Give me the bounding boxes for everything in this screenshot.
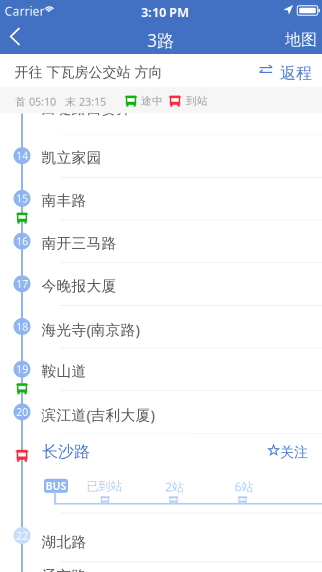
button[interactable]: 地图 [276,20,322,54]
button[interactable]: 南丰路 [0,178,322,220]
button[interactable]: 长沙路 [42,434,192,468]
staticText: 3路 [147,28,174,52]
button[interactable]: 滨江道(吉利大厦) [0,391,322,433]
staticText: 14 [16,148,28,163]
button[interactable]: 返程 [254,54,322,87]
staticText: 地图 [285,29,317,50]
staticText: 20 [16,405,28,419]
staticText: 南丰路 [41,191,86,210]
staticText: 16 [16,234,28,248]
staticText: 途中 [141,94,163,108]
staticText: 滨江道(吉利大厦) [41,405,154,425]
staticText: BUS [45,478,66,493]
staticText: 海光寺(南京路) [41,319,139,339]
staticText: 17 [16,276,28,291]
staticText: 6站 [234,479,253,495]
staticText: 到站 [186,94,208,108]
staticText: 22 [16,528,28,543]
staticText: 3:10 PM [141,3,189,21]
button[interactable]: Back [0,20,42,54]
staticText: 2站 [165,479,184,495]
staticText: Carrier [4,3,44,19]
staticText: 湖北路 [41,533,86,551]
staticText: 已到站 [86,479,122,494]
staticText: 鞍山道 [41,362,86,381]
button[interactable]: 关注 [268,435,318,467]
button[interactable]: 海光寺(南京路) [0,306,322,348]
button[interactable]: 今晚报大厦 [0,263,322,305]
staticText: 辽宁路 [41,567,86,572]
staticText: 首 05:10 末 23:15 [15,94,106,109]
staticText: 15 [16,191,28,206]
staticText: 18 [16,319,28,334]
button[interactable]: 南开三马路 [0,221,322,262]
staticText: 关注 [280,444,308,461]
staticText: 南开三马路 [41,234,116,253]
staticText: 长沙路 [42,442,90,462]
staticText: 凯立家园 [41,149,101,167]
button[interactable]: 鞍山道 [0,349,322,390]
staticText: 开往 下瓦房公交站 方向 [14,63,162,81]
staticText: 19 [16,362,28,376]
button[interactable]: 凯立家园 [0,135,322,177]
staticText: 今晚报大厦 [41,277,116,295]
staticText: 白堤路西姜井 [41,99,131,118]
button[interactable]: 湖北路 [0,519,322,561]
staticText: 返程 [280,63,312,83]
